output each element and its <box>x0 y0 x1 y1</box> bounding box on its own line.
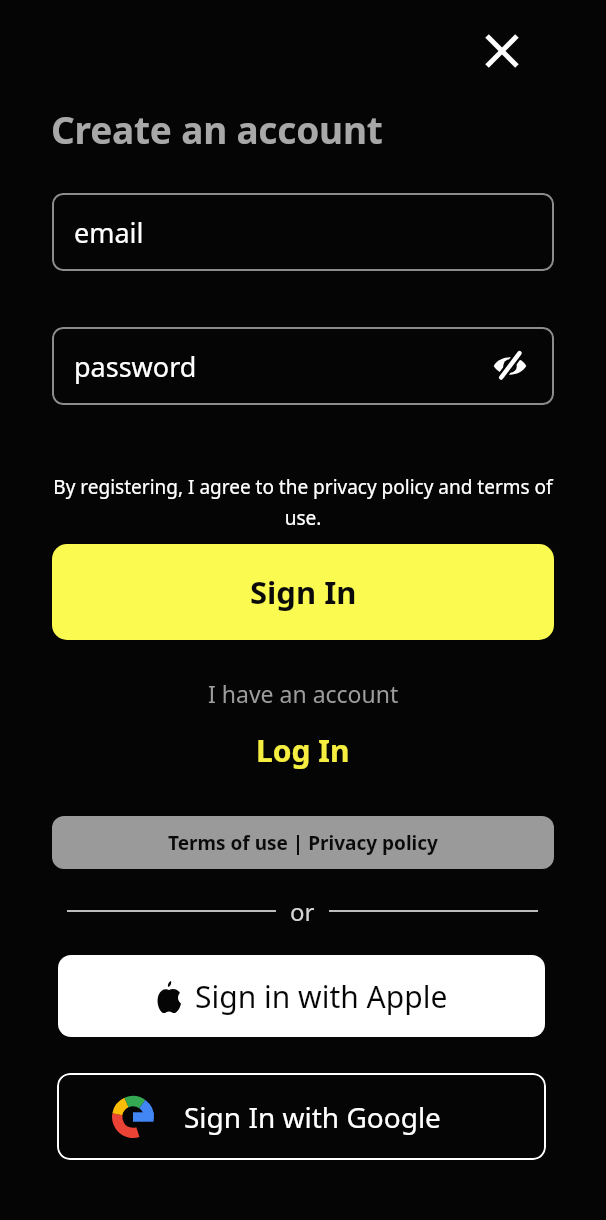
button[interactable]: Log In <box>190 726 416 774</box>
staticText: Sign In <box>250 571 357 613</box>
staticText: email <box>74 214 144 251</box>
button[interactable]: Terms of use | Privacy policy <box>52 816 554 869</box>
button[interactable]: password <box>52 327 554 405</box>
staticText: Create an account <box>51 104 383 154</box>
staticText: Sign in with Apple <box>195 976 448 1017</box>
button[interactable]: Sign in with Apple <box>58 955 545 1037</box>
button[interactable]: Sign In with Google <box>57 1073 546 1160</box>
staticText: I have an account <box>208 678 399 709</box>
staticText: password <box>74 348 197 385</box>
staticText: By registering, I agree to the privacy p… <box>40 474 566 531</box>
staticText: or <box>290 895 315 928</box>
button[interactable]: Close <box>472 21 532 81</box>
button[interactable]: Sign In <box>52 544 554 640</box>
staticText: Log In <box>256 730 350 771</box>
staticText: Terms of use | Privacy policy <box>168 830 438 856</box>
button[interactable]: Show password <box>488 344 532 388</box>
staticText: Sign In with Google <box>184 1098 441 1136</box>
button[interactable]: email <box>52 193 554 271</box>
